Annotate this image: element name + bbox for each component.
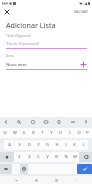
staticText: Q [3, 130, 7, 136]
button[interactable]: G [43, 140, 52, 150]
button[interactable]: More [72, 176, 80, 184]
staticText: Novo item [6, 61, 27, 67]
staticText: F [37, 142, 40, 148]
staticText: . [72, 166, 74, 172]
button[interactable]: K [70, 140, 79, 150]
button[interactable]: T [38, 128, 47, 138]
button[interactable]: SALVAR [72, 7, 90, 16]
button[interactable]: backspace [79, 152, 92, 162]
button[interactable]: S [14, 140, 24, 150]
staticText: A [8, 142, 11, 148]
staticText: V [46, 154, 49, 160]
staticText: D [28, 142, 31, 148]
staticText: Y [50, 130, 53, 136]
button[interactable]: R [29, 128, 38, 138]
button[interactable]: C [34, 152, 43, 162]
staticText: N [64, 154, 68, 160]
button[interactable]: , [12, 164, 20, 174]
staticText: E [23, 130, 26, 136]
staticText: J [65, 142, 67, 148]
button[interactable]: F [34, 140, 43, 150]
button[interactable]: J [61, 140, 70, 150]
staticText: B [55, 154, 58, 160]
staticText: X [28, 154, 31, 160]
button[interactable]: U [56, 128, 65, 138]
staticText: R [32, 130, 35, 136]
button[interactable]: V [43, 152, 52, 162]
button[interactable]: sticker [29, 118, 37, 126]
button[interactable]: Enter [77, 164, 92, 174]
staticText: K [73, 142, 76, 148]
staticText: S [18, 142, 21, 148]
button[interactable]: num [0, 164, 12, 174]
button[interactable]: W [10, 128, 20, 138]
button[interactable]: Hide keyboard [12, 176, 20, 184]
staticText: , [15, 166, 17, 172]
staticText: SALVAR [74, 9, 88, 14]
button[interactable]: I [65, 128, 74, 138]
button[interactable]: Home [32, 176, 40, 184]
staticText: Título (Opcional) [6, 34, 31, 38]
button[interactable]: Z [14, 152, 24, 162]
button[interactable]: Novo item [6, 61, 79, 67]
staticText: O [77, 130, 81, 136]
button[interactable]: M [70, 152, 79, 162]
button[interactable]: P [83, 128, 92, 138]
button[interactable]: Add item [79, 60, 87, 68]
staticText: W [13, 130, 17, 136]
button[interactable]: X [24, 152, 34, 162]
button[interactable]: A [4, 140, 14, 150]
staticText: H [55, 142, 59, 148]
staticText: Título (Opcional) [6, 40, 40, 46]
staticText: Itens [6, 54, 14, 58]
staticText: M [73, 154, 77, 160]
button[interactable]: dots [69, 118, 77, 126]
staticText: Adicionar Lista [6, 20, 56, 30]
button[interactable]: D [24, 140, 34, 150]
button[interactable]: shift [0, 152, 14, 162]
button[interactable]: gif [42, 118, 50, 126]
button[interactable]: clipboard [55, 118, 63, 126]
button[interactable]: B [52, 152, 61, 162]
button[interactable]: Close [2, 7, 11, 16]
staticText: C [37, 154, 40, 160]
button[interactable]: search [15, 118, 23, 126]
button[interactable]: Título (Opcional) [6, 40, 87, 49]
button[interactable]: Y [47, 128, 56, 138]
staticText: L [82, 142, 85, 148]
button[interactable]: L [79, 140, 88, 150]
staticText: P [86, 130, 89, 136]
button[interactable]: emoji [20, 164, 28, 174]
button[interactable]: chevron [2, 118, 10, 126]
button[interactable]: Recents [52, 176, 60, 184]
button[interactable]: mic [82, 118, 90, 126]
button[interactable]: O [74, 128, 83, 138]
staticText: T [41, 130, 44, 136]
button[interactable]: H [52, 140, 61, 150]
button[interactable]: N [61, 152, 70, 162]
staticText: Z [18, 154, 21, 160]
button[interactable]: Q [0, 128, 10, 138]
staticText: U [59, 130, 62, 136]
button[interactable]: E [20, 128, 29, 138]
staticText: I [69, 130, 71, 136]
staticText: G [46, 142, 49, 148]
